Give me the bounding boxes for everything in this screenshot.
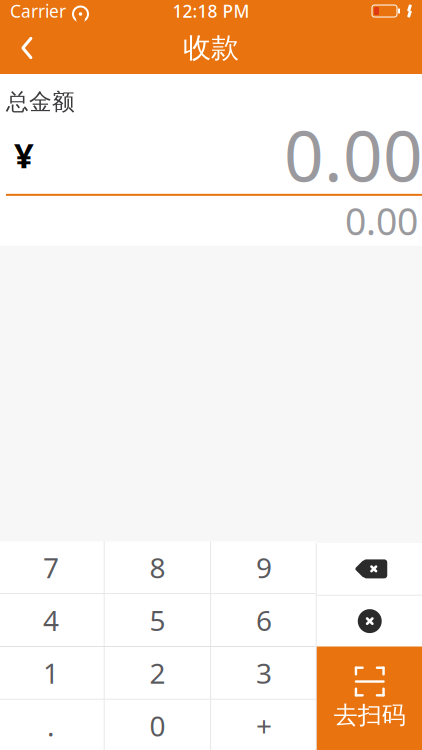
staticText: 0.00: [345, 196, 418, 246]
staticText: 9: [256, 549, 272, 586]
button[interactable]: .: [0, 700, 104, 750]
staticText: .: [47, 707, 55, 744]
button[interactable]: 去扫码: [317, 646, 422, 750]
staticText: 3: [256, 654, 272, 691]
button[interactable]: 5: [105, 594, 210, 646]
button[interactable]: 0: [105, 700, 210, 750]
button[interactable]: Back: [0, 25, 38, 71]
button[interactable]: +: [211, 700, 317, 750]
button[interactable]: 9: [211, 541, 317, 593]
button[interactable]: 7: [0, 541, 104, 593]
staticText: 12:18 PM: [172, 0, 249, 22]
button[interactable]: 2: [105, 647, 210, 699]
staticText: 1: [43, 654, 59, 691]
staticText: +: [256, 707, 272, 744]
staticText: ¥: [14, 132, 34, 178]
button[interactable]: 8: [105, 541, 210, 593]
staticText: 0: [149, 707, 165, 744]
staticText: Carrier: [10, 0, 66, 22]
staticText: 4: [43, 601, 59, 639]
staticText: 0.00: [284, 109, 422, 201]
staticText: 收款: [183, 31, 239, 65]
staticText: 6: [256, 601, 272, 639]
staticText: 2: [149, 654, 165, 691]
button[interactable]: Clear: [317, 596, 422, 647]
staticText: 总金额: [6, 88, 75, 116]
button[interactable]: Backspace: [317, 543, 422, 595]
staticText: 8: [149, 549, 165, 586]
button[interactable]: 3: [211, 647, 317, 699]
button[interactable]: 6: [211, 594, 317, 646]
staticText: 7: [43, 549, 59, 586]
staticText: 5: [149, 601, 165, 639]
staticText: 去扫码: [334, 700, 406, 730]
button[interactable]: 4: [0, 594, 104, 646]
button[interactable]: 1: [0, 647, 104, 699]
